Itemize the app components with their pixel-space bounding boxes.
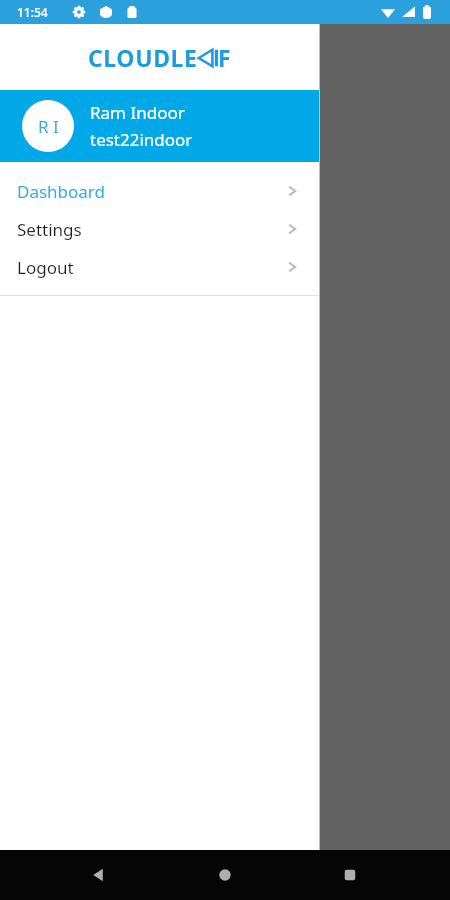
staticText: Logout — [17, 256, 74, 279]
button[interactable]: R I — [0, 90, 320, 162]
button[interactable]: Recent apps — [339, 864, 361, 886]
button[interactable]: Settings — [0, 210, 320, 248]
button[interactable]: Home — [214, 864, 236, 886]
staticText: Dashboard — [17, 180, 106, 203]
staticText: test22indoor — [90, 128, 193, 151]
button[interactable] — [0, 24, 450, 900]
button[interactable]: Logout — [0, 248, 320, 286]
button[interactable] — [24, 184, 434, 228]
staticText: F — [218, 42, 232, 73]
button[interactable]: Back — [87, 864, 109, 886]
staticText: R I — [38, 115, 59, 138]
staticText: Ram Indoor — [90, 101, 185, 124]
staticText: No devices are assigned to this account. — [24, 121, 271, 170]
button[interactable]: Dashboard — [0, 172, 320, 210]
staticText: CLOUDLE — [88, 42, 198, 73]
staticText: 11:54 — [17, 4, 48, 20]
staticText: Settings — [17, 218, 82, 241]
